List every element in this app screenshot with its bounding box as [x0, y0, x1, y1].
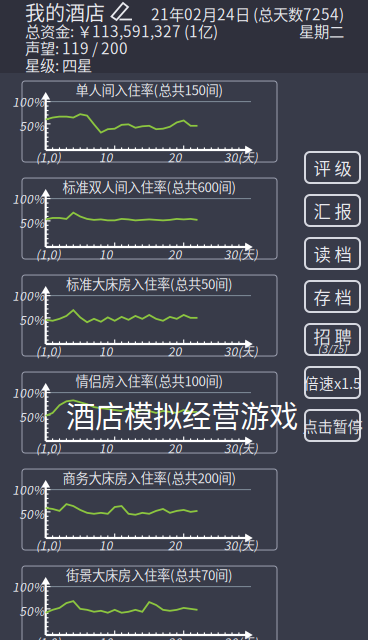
- staticText: 100%: [12, 287, 44, 304]
- staticText: 50%: [19, 602, 44, 619]
- staticText: 情侣房入住率(总共100间): [75, 371, 223, 390]
- staticText: 20: [168, 633, 182, 640]
- staticText: 10: [99, 245, 113, 263]
- staticText: 10: [99, 148, 113, 166]
- staticText: 50%: [19, 117, 44, 134]
- staticText: (1,0): [36, 245, 61, 263]
- button[interactable]: 读 档: [305, 238, 360, 269]
- staticText: 30(天): [224, 148, 258, 166]
- staticText: 20: [168, 245, 182, 263]
- staticText: 星级: 四星: [25, 53, 92, 76]
- staticText: 我的酒店: [25, 0, 105, 26]
- staticText: (1,0): [36, 342, 61, 360]
- staticText: 20: [168, 342, 182, 360]
- staticText: 20: [168, 439, 182, 457]
- button[interactable]: 点击暂停: [305, 410, 360, 441]
- staticText: (1,0): [36, 536, 61, 554]
- staticText: 星期二: [299, 19, 344, 42]
- staticText: 21年02月24日 (总天数7254): [151, 2, 344, 25]
- staticText: 商务大床房入住率(总共200间): [62, 468, 236, 487]
- staticText: (1,0): [36, 439, 61, 457]
- button[interactable]: Rename hotel: [110, 1, 134, 22]
- staticText: 50%: [19, 408, 44, 425]
- staticText: 招 聘: [313, 323, 351, 349]
- staticText: 单人间入住率(总共150间): [75, 80, 223, 99]
- staticText: 100%: [12, 578, 44, 595]
- staticText: 20: [168, 148, 182, 166]
- button[interactable]: 存 档: [305, 281, 360, 312]
- staticText: 10: [99, 536, 113, 554]
- button[interactable]: 评 级: [305, 152, 360, 183]
- staticText: 汇 报: [313, 198, 351, 223]
- button[interactable]: 招 聘: [305, 324, 360, 355]
- staticText: 100%: [12, 93, 44, 110]
- button[interactable]: 汇 报: [305, 195, 360, 226]
- staticText: 评 级: [313, 155, 351, 180]
- staticText: (1,0): [36, 633, 61, 640]
- staticText: 标准大床房入住率(总共50间): [66, 274, 233, 293]
- staticText: (1,0): [36, 148, 61, 166]
- staticText: 50%: [19, 505, 44, 522]
- staticText: 10: [99, 342, 113, 360]
- staticText: 街景大床房入住率(总共70间): [66, 565, 233, 584]
- button[interactable]: 倍速x1.5: [305, 367, 360, 398]
- staticText: 存 档: [313, 284, 351, 309]
- staticText: (3/75): [317, 341, 347, 356]
- staticText: 声望: 119 / 200: [25, 36, 128, 59]
- staticText: 标准双人间入住率(总共600间): [62, 177, 236, 196]
- staticText: 点击暂停: [302, 414, 362, 437]
- staticText: 100%: [12, 384, 44, 401]
- staticText: 50%: [19, 311, 44, 328]
- staticText: 10: [99, 439, 113, 457]
- staticText: 酒店模拟经营游戏: [66, 393, 298, 435]
- staticText: 30(天): [224, 342, 258, 360]
- staticText: 总资金: ￥113,591,327 (1亿): [25, 19, 218, 42]
- staticText: 20: [168, 536, 182, 554]
- staticText: 100%: [12, 190, 44, 207]
- staticText: 读 档: [313, 241, 351, 266]
- staticText: 30(天): [224, 245, 258, 263]
- staticText: 30(天): [224, 633, 258, 640]
- staticText: 倍速x1.5: [304, 372, 361, 393]
- staticText: 100%: [12, 481, 44, 498]
- staticText: 30(天): [224, 536, 258, 554]
- staticText: 30(天): [224, 439, 258, 457]
- staticText: 10: [99, 633, 113, 640]
- staticText: 50%: [19, 214, 44, 231]
